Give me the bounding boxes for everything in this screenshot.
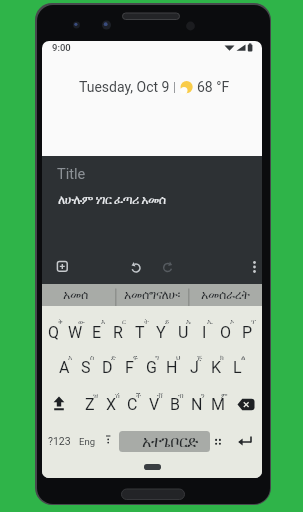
- staticText: ጅ: [197, 354, 203, 361]
- staticText: ን: [201, 392, 205, 399]
- staticText: Y: [156, 323, 166, 342]
- button[interactable]: [124, 256, 148, 280]
- button[interactable]: O: [215, 322, 237, 342]
- staticText: እ: [101, 318, 106, 325]
- button[interactable]: [48, 390, 74, 416]
- staticText: |: [173, 80, 176, 94]
- staticText: M: [211, 395, 225, 414]
- staticText: G: [146, 358, 157, 377]
- staticText: ብ: [178, 392, 184, 399]
- staticText: ፍ: [133, 354, 138, 361]
- staticText: ድ: [111, 354, 116, 361]
- staticText: ቭ: [157, 392, 163, 399]
- staticText: L: [233, 358, 242, 377]
- staticText: ግ: [155, 354, 160, 361]
- button[interactable]: [243, 255, 262, 279]
- button[interactable]: W: [64, 322, 86, 342]
- button[interactable]: አመሰ: [42, 284, 116, 306]
- button[interactable]: Q: [43, 322, 65, 342]
- button[interactable]: አተጌቦርድ: [119, 431, 210, 452]
- button[interactable]: R: [107, 322, 129, 342]
- staticText: ሽ: [115, 392, 120, 399]
- button[interactable]: Title: [42, 156, 262, 284]
- staticText: W: [68, 323, 83, 342]
- button[interactable]: P: [236, 322, 258, 342]
- staticText: ት: [144, 318, 149, 325]
- staticText: U: [178, 323, 189, 342]
- button[interactable]: S: [75, 357, 97, 377]
- staticText: Eng: [79, 436, 95, 447]
- button[interactable]: T: [129, 322, 151, 342]
- staticText: አመሰ: [63, 289, 89, 302]
- staticText: X: [106, 395, 117, 414]
- button[interactable]: አመሰራረት: [189, 284, 262, 306]
- staticText: አ: [68, 354, 73, 361]
- staticText: ኡ: [186, 318, 192, 325]
- staticText: N: [191, 395, 203, 414]
- staticText: ዝ: [93, 392, 99, 399]
- button[interactable]: [234, 430, 257, 453]
- button[interactable]: H: [161, 357, 183, 377]
- button[interactable]: Eng: [75, 433, 99, 449]
- staticText: ?123: [48, 435, 71, 447]
- staticText: 9:00: [52, 42, 71, 53]
- staticText: ው: [78, 318, 85, 325]
- staticText: Title: [57, 166, 86, 183]
- button[interactable]: ?123: [45, 432, 74, 450]
- button[interactable]: E: [86, 322, 108, 342]
- staticText: E: [92, 323, 102, 342]
- button[interactable]: Y: [150, 322, 172, 342]
- staticText: ስ: [90, 354, 95, 361]
- staticText: 68 °F: [197, 79, 230, 95]
- staticText: አመሰግናለሁ፡: [124, 289, 181, 302]
- button[interactable]: [50, 254, 75, 279]
- button[interactable]: [156, 256, 180, 280]
- staticText: D: [102, 358, 113, 377]
- staticText: Z: [85, 395, 95, 414]
- staticText: R: [113, 323, 123, 342]
- staticText: Tuesday, Oct 9: [79, 79, 170, 95]
- button[interactable]: Z: [79, 394, 101, 414]
- staticText: P: [242, 323, 253, 342]
- button[interactable]: M: [207, 394, 229, 414]
- staticText: ቅ: [58, 318, 63, 325]
- staticText: ኦ: [230, 318, 235, 325]
- staticText: Q: [48, 323, 60, 342]
- button[interactable]: [233, 390, 259, 416]
- button[interactable]: [207, 430, 229, 453]
- button[interactable]: B: [164, 394, 186, 414]
- staticText: ል: [241, 354, 246, 361]
- staticText: C: [127, 395, 138, 414]
- staticText: F: [125, 358, 134, 377]
- button[interactable]: V: [143, 394, 165, 414]
- button[interactable]: X: [100, 394, 122, 414]
- button[interactable]: አመሰግናለሁ፡: [116, 284, 189, 306]
- staticText: K: [211, 358, 222, 377]
- staticText: ይ: [165, 318, 170, 325]
- button[interactable]: D: [96, 357, 118, 377]
- staticText: ም: [221, 392, 228, 399]
- staticText: H: [166, 358, 178, 377]
- button[interactable]: J: [183, 357, 205, 377]
- staticText: ህ: [176, 354, 181, 361]
- staticText: T: [135, 323, 145, 342]
- button[interactable]: I: [193, 322, 215, 342]
- button[interactable]: A: [53, 357, 75, 377]
- button[interactable]: F: [118, 357, 140, 377]
- staticText: V: [149, 395, 160, 414]
- button[interactable]: L: [226, 357, 248, 377]
- button[interactable]: U: [172, 322, 194, 342]
- staticText: ኢ: [207, 318, 213, 325]
- staticText: አተጌቦርድ: [142, 434, 198, 450]
- button[interactable]: C: [121, 394, 143, 414]
- button[interactable]: K: [205, 357, 227, 377]
- staticText: ር: [122, 318, 126, 325]
- staticText: I: [202, 323, 207, 342]
- staticText: ለሁሉም ነገር ፈጣሪ አመሰ: [58, 191, 166, 208]
- staticText: ች: [136, 392, 141, 399]
- staticText: S: [81, 358, 91, 377]
- button[interactable]: G: [140, 357, 162, 377]
- staticText: O: [220, 323, 232, 342]
- staticText: ክ: [220, 354, 224, 361]
- button[interactable]: N: [186, 394, 208, 414]
